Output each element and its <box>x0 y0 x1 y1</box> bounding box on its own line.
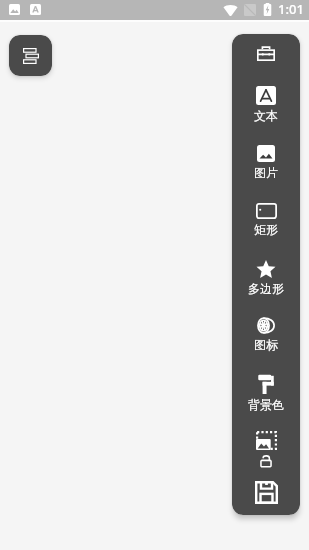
staticText: 1:01 <box>278 0 304 18</box>
button[interactable]: Save <box>232 475 300 510</box>
button[interactable]: 多边形 <box>232 256 300 296</box>
button[interactable]: Tools <box>232 40 300 67</box>
button[interactable]: 矩形 <box>232 199 300 237</box>
staticText: 图标 <box>254 337 278 352</box>
button[interactable]: Crop image <box>232 425 300 456</box>
staticText: 文本 <box>254 108 278 123</box>
button[interactable]: 图片 <box>232 141 300 180</box>
button[interactable]: Align <box>9 35 52 76</box>
button[interactable]: 图标 <box>232 313 300 352</box>
staticText: 背景色 <box>248 397 284 412</box>
staticText: 矩形 <box>254 222 278 237</box>
staticText: 图片 <box>254 165 278 180</box>
button[interactable]: 背景色 <box>232 370 300 412</box>
button[interactable]: 文本 <box>232 82 300 123</box>
staticText: 多边形 <box>248 281 284 296</box>
button[interactable]: Unlock <box>232 449 300 473</box>
